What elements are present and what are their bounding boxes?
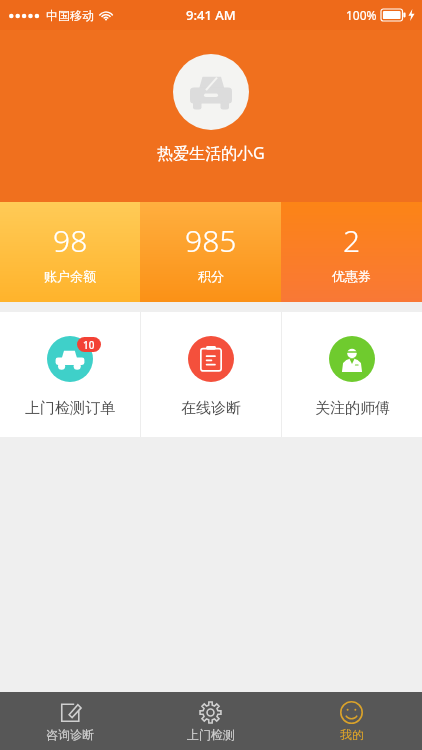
staticText: 咨询诊断 xyxy=(46,727,94,742)
button[interactable]: 我的 xyxy=(281,692,422,750)
staticText: 优惠券 xyxy=(332,268,371,284)
staticText: 中国移动 xyxy=(46,8,94,23)
staticText: 热爱生活的小G xyxy=(157,142,265,164)
button[interactable]: 98 xyxy=(0,202,140,302)
button[interactable]: 咨询诊断 xyxy=(0,692,140,750)
button[interactable]: 2 xyxy=(281,202,422,302)
staticText: 100% xyxy=(346,7,377,23)
button[interactable]: 在线诊断 xyxy=(141,312,281,437)
button[interactable]: 10 xyxy=(0,312,140,437)
staticText: 985 xyxy=(185,220,237,261)
button[interactable]: 上门检测 xyxy=(140,692,281,750)
staticText: 关注的师傅 xyxy=(315,399,390,418)
staticText: 9:41 AM xyxy=(186,6,236,24)
staticText: 98 xyxy=(53,220,88,261)
staticText: 积分 xyxy=(198,268,224,284)
staticText: 我的 xyxy=(340,727,364,742)
staticText: 上门检测订单 xyxy=(25,399,115,418)
staticText: 2 xyxy=(343,220,361,261)
staticText: 账户余额 xyxy=(44,268,96,284)
button[interactable]: 关注的师傅 xyxy=(282,312,422,437)
staticText: 10 xyxy=(83,338,95,352)
button[interactable]: Avatar xyxy=(173,54,249,130)
staticText: 在线诊断 xyxy=(181,399,241,418)
staticText: 上门检测 xyxy=(187,727,235,742)
button[interactable]: 985 xyxy=(140,202,281,302)
